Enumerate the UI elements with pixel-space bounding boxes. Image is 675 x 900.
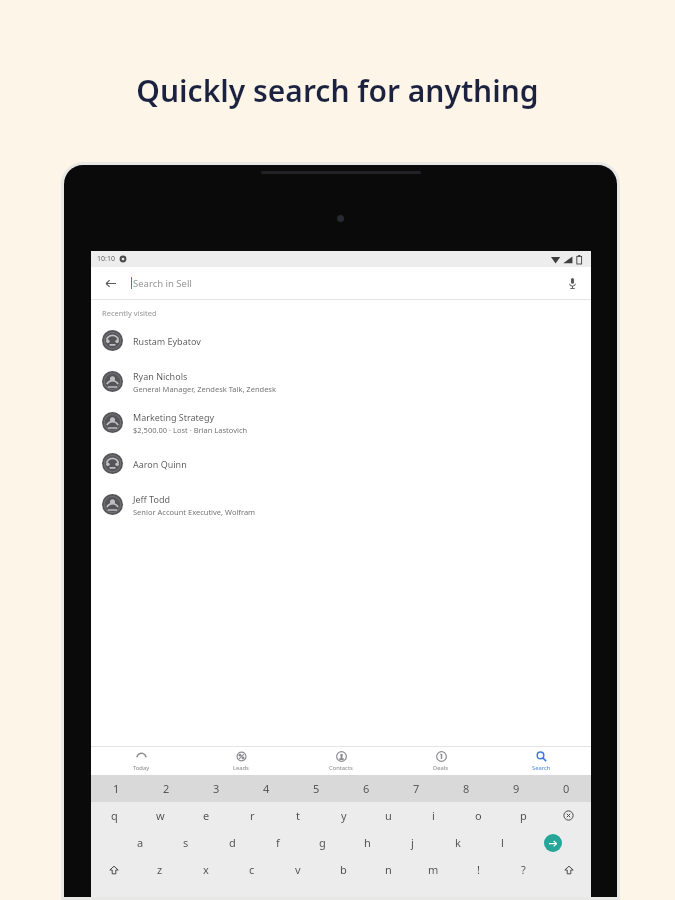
staticText: 5 xyxy=(313,781,320,796)
staticText: Rustam Eybatov xyxy=(133,335,201,347)
button[interactable]: ? xyxy=(501,856,546,883)
staticText: Leads xyxy=(233,764,249,772)
button[interactable]: Enter xyxy=(525,829,580,856)
staticText: p xyxy=(520,808,527,823)
button[interactable]: a xyxy=(117,829,163,856)
staticText: 6 xyxy=(363,781,370,796)
staticText: y xyxy=(341,808,347,823)
staticText: o xyxy=(475,808,482,823)
staticText: q xyxy=(111,808,118,823)
staticText: k xyxy=(455,835,461,850)
button[interactable]: e xyxy=(183,802,229,829)
button[interactable]: x xyxy=(183,856,229,883)
staticText: 3 xyxy=(213,781,220,796)
button[interactable]: Jeff Todd xyxy=(91,484,591,525)
staticText: Ryan Nichols xyxy=(133,370,188,382)
button[interactable]: Ryan Nichols xyxy=(91,361,591,402)
staticText: f xyxy=(276,835,280,850)
button[interactable]: o xyxy=(456,802,501,829)
button[interactable]: 5 xyxy=(291,775,341,802)
staticText: General Manager, Zendesk Talk, Zendesk xyxy=(133,384,276,394)
button[interactable]: n xyxy=(366,856,411,883)
button[interactable]: Leads xyxy=(191,747,291,775)
staticText: 2 xyxy=(163,781,170,796)
staticText: e xyxy=(203,808,210,823)
staticText: $2,500.00 · Lost · Brian Lastovich xyxy=(133,425,248,435)
staticText: 8 xyxy=(463,781,470,796)
button[interactable]: Rustam Eybatov xyxy=(91,320,591,361)
button[interactable]: r xyxy=(229,802,275,829)
staticText: Marketing Strategy xyxy=(133,411,215,423)
staticText: Search xyxy=(532,764,551,772)
staticText: d xyxy=(229,835,236,850)
button[interactable]: i xyxy=(411,802,456,829)
button[interactable]: ! xyxy=(456,856,501,883)
button[interactable]: Search xyxy=(491,747,591,775)
button[interactable]: Shift xyxy=(91,856,137,883)
staticText: 9 xyxy=(513,781,520,796)
button[interactable]: Marketing Strategy xyxy=(91,402,591,443)
button[interactable]: u xyxy=(366,802,411,829)
staticText: 10:10 xyxy=(97,254,115,264)
staticText: Search in Sell xyxy=(133,277,192,290)
staticText: z xyxy=(157,862,163,877)
button[interactable]: y xyxy=(321,802,366,829)
staticText: Today xyxy=(133,764,150,772)
button[interactable]: b xyxy=(321,856,366,883)
staticText: c xyxy=(249,862,255,877)
button[interactable]: w xyxy=(137,802,183,829)
staticText: 0 xyxy=(563,781,570,796)
button[interactable]: Shift xyxy=(546,856,591,883)
button[interactable]: k xyxy=(435,829,480,856)
button[interactable]: Today xyxy=(91,747,191,775)
button[interactable]: 2 xyxy=(141,775,191,802)
staticText: w xyxy=(156,808,165,823)
button[interactable]: 4 xyxy=(241,775,291,802)
button[interactable]: 6 xyxy=(341,775,391,802)
button[interactable]: j xyxy=(390,829,435,856)
button[interactable]: p xyxy=(501,802,546,829)
staticText: 1 xyxy=(113,781,120,796)
button[interactable]: h xyxy=(345,829,390,856)
staticText: Deals xyxy=(433,764,449,772)
staticText: Jeff Todd xyxy=(133,493,170,505)
button[interactable]: q xyxy=(91,802,137,829)
button[interactable]: z xyxy=(137,856,183,883)
button[interactable]: Backspace xyxy=(546,802,591,829)
button[interactable]: l xyxy=(480,829,525,856)
staticText: Quickly search for anything xyxy=(136,70,539,111)
button[interactable]: Back xyxy=(99,272,121,294)
button[interactable]: v xyxy=(275,856,321,883)
staticText: n xyxy=(385,862,392,877)
staticText: u xyxy=(385,808,392,823)
staticText: 7 xyxy=(413,781,420,796)
button[interactable]: 9 xyxy=(491,775,541,802)
staticText: t xyxy=(296,808,300,823)
button[interactable]: c xyxy=(229,856,275,883)
button[interactable]: f xyxy=(255,829,300,856)
staticText: x xyxy=(203,862,209,877)
staticText: g xyxy=(319,835,326,850)
button[interactable]: m xyxy=(411,856,456,883)
button[interactable]: 7 xyxy=(391,775,441,802)
staticText: Recently visited xyxy=(102,308,157,318)
button[interactable]: Deals xyxy=(391,747,491,775)
button[interactable]: Voice search xyxy=(561,272,583,294)
staticText: Aaron Quinn xyxy=(133,458,187,470)
button[interactable]: 0 xyxy=(541,775,591,802)
staticText: Senior Account Executive, Wolfram xyxy=(133,507,256,517)
button[interactable]: g xyxy=(300,829,345,856)
button[interactable]: d xyxy=(209,829,255,856)
staticText: h xyxy=(364,835,371,850)
button[interactable]: s xyxy=(163,829,209,856)
button[interactable]: t xyxy=(275,802,321,829)
button[interactable]: Aaron Quinn xyxy=(91,443,591,484)
staticText: j xyxy=(411,835,414,850)
staticText: r xyxy=(250,808,255,823)
button[interactable]: 8 xyxy=(441,775,491,802)
button[interactable]: Contacts xyxy=(291,747,391,775)
button[interactable]: 1 xyxy=(91,775,141,802)
button[interactable]: 3 xyxy=(191,775,241,802)
staticText: ? xyxy=(521,862,526,877)
staticText: s xyxy=(183,835,189,850)
